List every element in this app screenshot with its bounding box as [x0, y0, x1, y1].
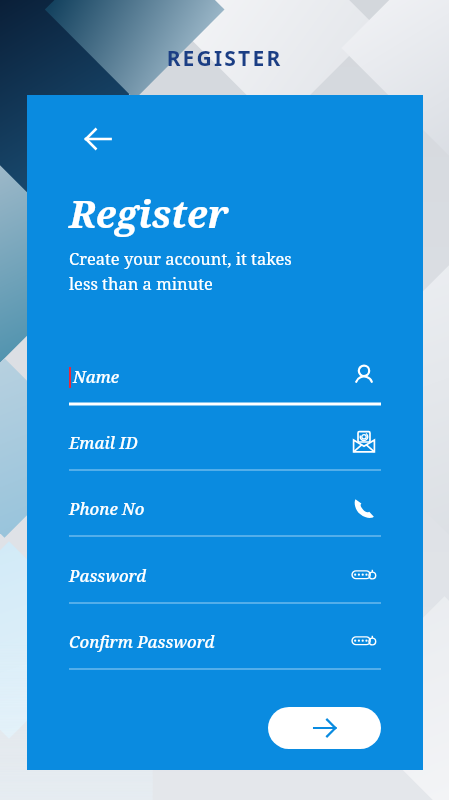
staticText: Register: [69, 187, 229, 239]
button[interactable]: Confirm Password: [69, 626, 381, 672]
staticText: Confirm Password: [69, 630, 215, 652]
staticText: Email ID: [69, 431, 138, 453]
button[interactable]: Submit: [268, 707, 381, 749]
button[interactable]: Back: [72, 113, 124, 165]
button[interactable]: Phone No: [69, 493, 381, 539]
staticText: Phone No: [69, 497, 145, 519]
staticText: REGISTER: [0, 44, 449, 73]
staticText: Name: [73, 365, 120, 387]
button[interactable]: Email ID: [69, 427, 381, 473]
button[interactable]: Name: [69, 361, 381, 407]
staticText: Password: [69, 564, 147, 586]
button[interactable]: Password: [69, 560, 381, 606]
staticText: Create your account, it takes less than …: [69, 247, 292, 294]
